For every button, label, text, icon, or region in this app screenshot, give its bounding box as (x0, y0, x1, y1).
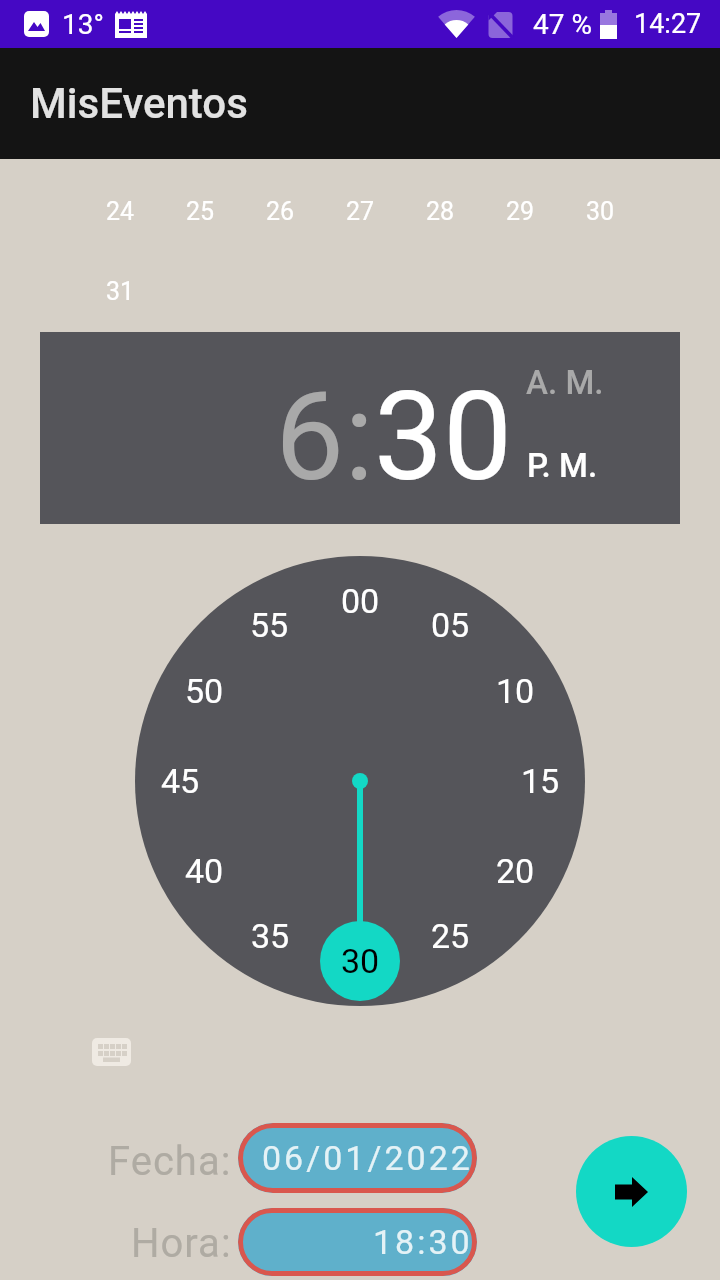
button[interactable]: 25 (160, 186, 240, 236)
staticText: 20 (496, 851, 535, 891)
button[interactable]: 40 (164, 846, 244, 896)
button[interactable] (576, 1136, 687, 1247)
button[interactable]: 29 (480, 186, 560, 236)
staticText: 06/01/2022 (262, 1138, 473, 1178)
staticText: Hora: (131, 1220, 232, 1262)
button[interactable]: 45 (140, 756, 220, 806)
staticText: 55 (250, 605, 289, 645)
staticText: 13° (62, 8, 104, 41)
staticText: 47 % (533, 8, 592, 41)
button[interactable]: 25 (410, 911, 490, 961)
button[interactable]: 15 (500, 756, 580, 806)
staticText: 27 (346, 197, 375, 226)
staticText: 29 (506, 197, 535, 226)
staticText: P. M. (527, 446, 598, 485)
staticText: MisEventos (30, 79, 248, 128)
staticText: 40 (185, 851, 224, 891)
button[interactable]: 00 (320, 576, 400, 626)
staticText: 24 (106, 197, 135, 226)
staticText: 25 (186, 197, 215, 226)
button[interactable]: 20 (475, 846, 555, 896)
staticText: Fecha: (108, 1138, 232, 1180)
staticText: 30 (341, 941, 380, 981)
button[interactable]: 24 (80, 186, 160, 236)
button[interactable]: 10 (475, 666, 555, 716)
button[interactable]: 06/01/2022 (238, 1123, 477, 1193)
staticText: A. M. (526, 363, 604, 402)
staticText: 25 (431, 916, 470, 956)
staticText: 26 (266, 197, 295, 226)
button[interactable] (92, 1038, 131, 1066)
button[interactable]: 50 (164, 666, 244, 716)
staticText: 14:27 (634, 8, 702, 40)
button[interactable]: 28 (400, 186, 480, 236)
button[interactable]: 31 (80, 266, 160, 316)
button[interactable]: A. M. (495, 352, 635, 412)
staticText: 28 (426, 197, 455, 226)
staticText: 50 (185, 671, 224, 711)
button[interactable]: 27 (320, 186, 400, 236)
button[interactable]: 30 (320, 936, 400, 986)
button[interactable]: 05 (410, 600, 490, 650)
button[interactable]: 55 (229, 600, 309, 650)
staticText: 10 (496, 671, 535, 711)
staticText: 45 (161, 761, 200, 801)
button[interactable]: 30 (560, 186, 640, 236)
staticText: 05 (431, 605, 470, 645)
button[interactable]: 18:30 (238, 1208, 477, 1276)
button[interactable]: 26 (240, 186, 320, 236)
button[interactable]: 35 (230, 911, 310, 961)
button[interactable]: P. M. (492, 435, 632, 495)
staticText: 35 (251, 916, 290, 956)
staticText: 18:30 (373, 1222, 473, 1262)
staticText: 31 (106, 277, 135, 306)
staticText: 6:30 (275, 365, 513, 509)
staticText: 30 (586, 197, 615, 226)
staticText: 00 (341, 581, 380, 621)
staticText: 15 (521, 761, 560, 801)
